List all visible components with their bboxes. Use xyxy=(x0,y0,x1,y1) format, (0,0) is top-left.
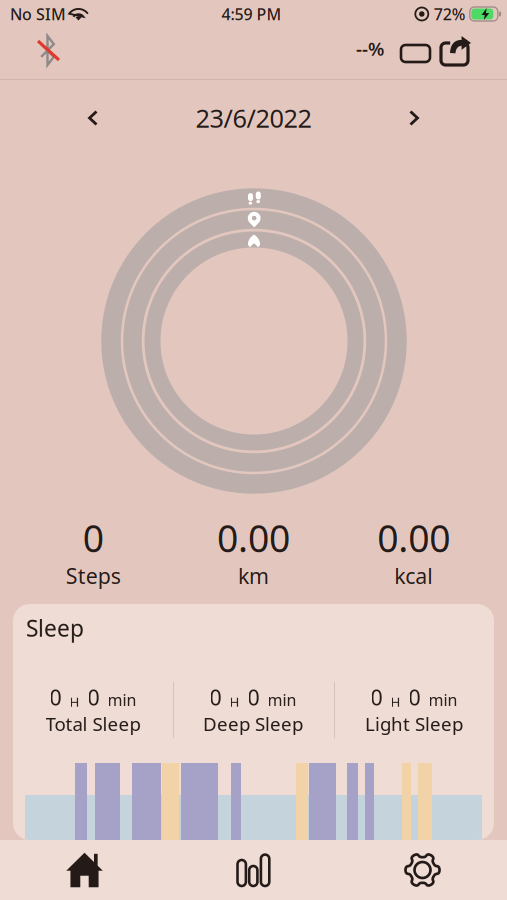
staticText: 0 xyxy=(83,513,104,563)
staticText: 23/6/2022 xyxy=(195,101,311,135)
staticText: 0.00 xyxy=(377,513,450,563)
staticText: 0 xyxy=(370,683,382,711)
staticText: kcal xyxy=(394,562,433,590)
staticText: 4:59 PM xyxy=(221,3,281,25)
staticText: 0 xyxy=(209,683,221,711)
staticText: Deep Sleep xyxy=(203,711,303,736)
button[interactable]: Statistics xyxy=(169,840,338,900)
button[interactable]: Next day xyxy=(390,95,438,141)
staticText: H xyxy=(390,693,400,710)
staticText: km xyxy=(238,562,269,590)
staticText: Sleep xyxy=(26,613,84,643)
button[interactable]: Previous day xyxy=(69,95,117,141)
staticText: 0 xyxy=(49,683,61,711)
staticText: 0.00 xyxy=(217,513,290,563)
staticText: Light Sleep xyxy=(365,711,463,736)
button[interactable]: Home xyxy=(0,840,169,900)
staticText: min xyxy=(267,689,296,710)
staticText: H xyxy=(229,693,239,710)
staticText: 72% xyxy=(434,3,466,25)
staticText: Steps xyxy=(66,562,121,590)
staticText: H xyxy=(69,693,79,710)
staticText: min xyxy=(428,689,457,710)
staticText: 0 xyxy=(247,683,259,711)
staticText: 0 xyxy=(87,683,99,711)
staticText: --% xyxy=(356,36,384,61)
staticText: No SIM xyxy=(10,3,66,25)
button[interactable]: Settings xyxy=(338,840,507,900)
button[interactable]: Share xyxy=(441,36,475,72)
staticText: min xyxy=(107,689,136,710)
staticText: 0 xyxy=(408,683,420,711)
staticText: Total Sleep xyxy=(45,711,140,736)
